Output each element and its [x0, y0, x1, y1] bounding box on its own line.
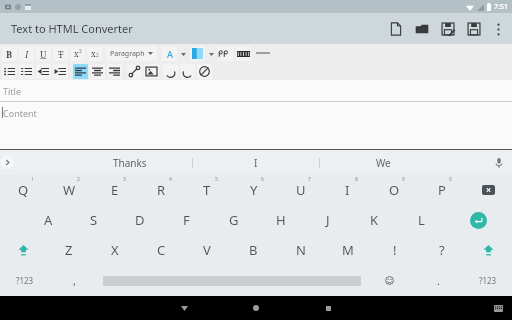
- staticText: 2: [77, 176, 80, 183]
- button[interactable]: ,: [50, 265, 99, 296]
- staticText: D: [135, 211, 145, 229]
- staticText: Text to HTML Converter: [11, 21, 133, 36]
- staticText: Y: [250, 181, 258, 199]
- button[interactable]: I: [324, 175, 371, 205]
- button[interactable]: Clear formatting: [197, 64, 212, 79]
- button[interactable]: Thanks: [67, 150, 192, 175]
- staticText: A: [44, 211, 53, 229]
- button[interactable]: [256, 48, 270, 58]
- button[interactable]: Q: [0, 175, 46, 205]
- button[interactable]: Hide keyboard: [490, 300, 506, 316]
- button[interactable]: Backspace: [465, 175, 512, 205]
- button[interactable]: Align right: [107, 64, 122, 79]
- staticText: 5: [215, 176, 218, 183]
- button[interactable]: Redo: [180, 64, 195, 79]
- button[interactable]: Back: [173, 297, 195, 319]
- button[interactable]: Z: [46, 235, 92, 265]
- button[interactable]: Strikethrough: [53, 46, 68, 61]
- button[interactable]: Underline: [36, 46, 51, 61]
- staticText: B: [6, 48, 13, 60]
- button[interactable]: Bold: [2, 46, 17, 61]
- button[interactable]: P: [418, 175, 465, 205]
- button[interactable]: Undo: [163, 64, 178, 79]
- button[interactable]: More options: [487, 15, 509, 43]
- button[interactable]: ?: [418, 235, 465, 265]
- button[interactable]: Recents: [317, 297, 339, 319]
- button[interactable]: F: [163, 205, 210, 235]
- button[interactable]: Align left: [73, 64, 88, 79]
- button[interactable]: A: [25, 205, 71, 235]
- button[interactable]: New document: [383, 15, 409, 43]
- button[interactable]: Align center: [90, 64, 105, 79]
- staticText: I: [25, 48, 29, 60]
- button[interactable]: [179, 50, 187, 58]
- button[interactable]: Italic: [19, 46, 34, 61]
- button[interactable]: E: [92, 175, 138, 205]
- staticText: C: [157, 241, 166, 259]
- button[interactable]: M: [324, 235, 371, 265]
- button[interactable]: L: [398, 205, 445, 235]
- button[interactable]: O: [371, 175, 418, 205]
- staticText: M: [342, 241, 354, 259]
- button[interactable]: Decrease indent: [36, 64, 51, 79]
- button[interactable]: Insert link: [127, 64, 142, 79]
- button[interactable]: Expand: [1, 156, 14, 169]
- staticText: F: [183, 211, 190, 229]
- button[interactable]: R: [138, 175, 184, 205]
- button[interactable]: Paragraph: [106, 46, 157, 61]
- button[interactable]: Emoji: [365, 265, 414, 296]
- staticText: U: [296, 181, 306, 199]
- button[interactable]: [207, 50, 215, 58]
- button[interactable]: Home: [245, 297, 267, 319]
- staticText: 7:51: [494, 2, 508, 12]
- button[interactable]: Quote: [218, 46, 233, 61]
- staticText: 4: [169, 176, 172, 183]
- button[interactable]: Voice input: [492, 156, 506, 170]
- button[interactable]: D: [117, 205, 163, 235]
- button[interactable]: Shift: [465, 235, 512, 265]
- staticText: Thanks: [113, 156, 147, 170]
- button[interactable]: X: [92, 235, 138, 265]
- staticText: R: [157, 181, 166, 199]
- button[interactable]: H: [257, 205, 304, 235]
- button[interactable]: Numbered list: [19, 64, 34, 79]
- button[interactable]: N: [277, 235, 324, 265]
- button[interactable]: Y: [230, 175, 277, 205]
- button[interactable]: Shift: [0, 235, 46, 265]
- button[interactable]: ?123: [463, 265, 512, 296]
- staticText: Title: [3, 85, 21, 97]
- staticText: J: [326, 211, 330, 229]
- button[interactable]: K: [351, 205, 398, 235]
- button[interactable]: B: [230, 235, 277, 265]
- button[interactable]: Subscript: [87, 46, 102, 61]
- button[interactable]: Insert image: [144, 64, 159, 79]
- button[interactable]: I: [193, 150, 319, 175]
- button[interactable]: W: [46, 175, 92, 205]
- staticText: .: [437, 273, 440, 288]
- button[interactable]: J: [304, 205, 351, 235]
- staticText: Content: [3, 107, 37, 119]
- button[interactable]: We: [320, 150, 446, 175]
- button[interactable]: V: [184, 235, 230, 265]
- button[interactable]: U: [277, 175, 324, 205]
- button[interactable]: !: [371, 235, 418, 265]
- button[interactable]: ?123: [0, 265, 50, 296]
- button[interactable]: Enter: [445, 205, 512, 235]
- button[interactable]: Highlight color: [190, 46, 205, 61]
- button[interactable]: G: [210, 205, 257, 235]
- button[interactable]: Bulleted list: [2, 64, 17, 79]
- button[interactable]: S: [71, 205, 117, 235]
- button[interactable]: C: [138, 235, 184, 265]
- button[interactable]: Text color: [162, 46, 177, 61]
- button[interactable]: Superscript: [70, 46, 85, 61]
- button[interactable]: Increase indent: [53, 64, 68, 79]
- staticText: A: [167, 48, 173, 60]
- button[interactable]: Horizontal rule: [236, 46, 251, 61]
- button[interactable]: Space: [99, 265, 365, 296]
- button[interactable]: Save: [461, 15, 487, 43]
- button[interactable]: Open folder: [409, 15, 435, 43]
- button[interactable]: Save as: [435, 15, 461, 43]
- staticText: L: [418, 211, 425, 229]
- button[interactable]: T: [184, 175, 230, 205]
- button[interactable]: .: [414, 265, 463, 296]
